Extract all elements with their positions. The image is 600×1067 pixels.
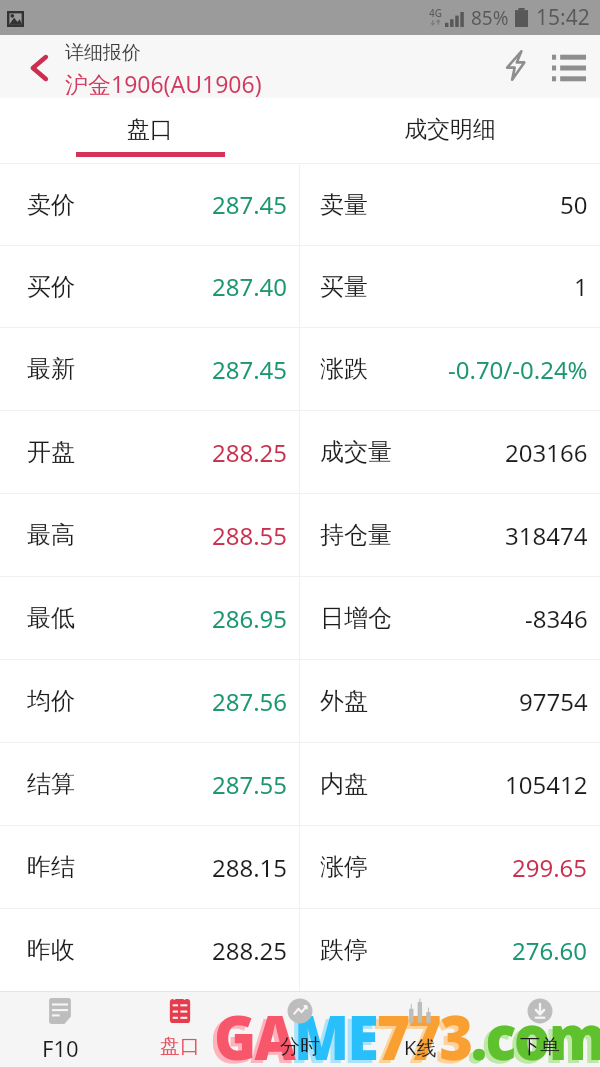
staticText: 15:42 <box>536 3 590 32</box>
staticText: -8346 <box>525 602 588 635</box>
staticText: 318474 <box>505 519 588 552</box>
staticText: m <box>549 994 600 1067</box>
staticText: E <box>343 997 373 1067</box>
staticText: 287.45 <box>212 188 288 221</box>
button[interactable]: 盘口 <box>0 98 300 163</box>
staticText: 4G <box>429 6 442 20</box>
staticText: 7 <box>404 997 435 1067</box>
staticText: 97754 <box>519 685 588 718</box>
button[interactable]: 买量 <box>300 246 600 327</box>
staticText: 287.40 <box>212 270 288 303</box>
staticText: 外盘 <box>320 686 368 716</box>
button[interactable]: 持仓量 <box>300 494 600 576</box>
staticText: 85% <box>471 5 509 31</box>
button[interactable]: 均价 <box>0 660 299 742</box>
staticText: 日增仓 <box>320 603 392 633</box>
button[interactable]: 涨停 <box>300 826 600 908</box>
staticText: 开盘 <box>27 437 75 467</box>
button[interactable]: 昨结 <box>0 826 299 908</box>
staticText: 299.65 <box>512 851 588 884</box>
button[interactable]: 下单 <box>480 991 600 1067</box>
staticText: F10 <box>42 1033 79 1063</box>
staticText: 涨停 <box>320 852 368 882</box>
button[interactable]: 结算 <box>0 743 299 825</box>
staticText: 7 <box>373 997 404 1067</box>
staticText: 1 <box>574 270 588 303</box>
staticText: A <box>254 994 294 1067</box>
staticText: 最新 <box>27 354 75 384</box>
button[interactable]: F10 <box>0 991 120 1067</box>
staticText: G <box>214 994 254 1067</box>
button[interactable]: Quick trade <box>486 35 540 98</box>
staticText: 最高 <box>27 520 75 550</box>
staticText: 成交量 <box>320 437 392 467</box>
staticText: 分时 <box>280 1034 320 1059</box>
button[interactable]: List menu <box>540 35 600 98</box>
staticText: A <box>250 997 290 1067</box>
staticText: 7 <box>408 994 439 1067</box>
staticText: M <box>290 997 343 1067</box>
staticText: 盘口 <box>127 115 173 144</box>
staticText: 跌停 <box>320 935 368 965</box>
button[interactable]: 开盘 <box>0 411 299 493</box>
staticText: 昨收 <box>27 935 75 965</box>
button[interactable]: 昨收 <box>0 909 299 991</box>
staticText: . <box>467 997 481 1067</box>
staticText: 沪金1906(AU1906) <box>65 68 262 99</box>
staticText: 详细报价 <box>65 41 141 65</box>
staticText: 3 <box>439 994 471 1067</box>
staticText: 买量 <box>320 272 368 302</box>
staticText: 203166 <box>505 436 588 469</box>
button[interactable]: 外盘 <box>300 660 600 742</box>
button[interactable]: 成交明细 <box>300 98 600 163</box>
staticText: 287.55 <box>212 768 288 801</box>
button[interactable]: 卖量 <box>300 164 600 245</box>
staticText: 288.55 <box>212 519 288 552</box>
staticText: 结算 <box>27 769 75 799</box>
button[interactable]: 卖价 <box>0 164 299 245</box>
staticText: 持仓量 <box>320 520 392 550</box>
staticText: 287.45 <box>212 353 288 386</box>
staticText: 涨跌 <box>320 354 368 384</box>
staticText: 买价 <box>27 272 75 302</box>
button[interactable]: 买价 <box>0 246 299 327</box>
staticText: o <box>510 997 545 1067</box>
staticText: 286.95 <box>212 602 288 635</box>
staticText: 成交明细 <box>404 115 496 144</box>
staticText: m <box>545 997 600 1067</box>
staticText: 276.60 <box>512 934 588 967</box>
staticText: M <box>294 994 347 1067</box>
button[interactable]: 涨跌 <box>300 328 600 410</box>
staticText: -0.70/-0.24% <box>448 353 588 386</box>
staticText: 内盘 <box>320 769 368 799</box>
button[interactable]: 最新 <box>0 328 299 410</box>
button[interactable]: 日增仓 <box>300 577 600 659</box>
staticText: c <box>481 997 510 1067</box>
staticText: o <box>514 994 549 1067</box>
button[interactable]: 最低 <box>0 577 299 659</box>
button[interactable]: 分时 <box>240 991 360 1067</box>
button[interactable]: K线 <box>360 991 480 1067</box>
staticText: G <box>210 997 250 1067</box>
staticText: 卖价 <box>27 190 75 220</box>
staticText: 均价 <box>27 686 75 716</box>
staticText: 3 <box>435 997 467 1067</box>
button[interactable]: 最高 <box>0 494 299 576</box>
button[interactable]: Back <box>0 35 64 98</box>
button[interactable]: 跌停 <box>300 909 600 991</box>
button[interactable]: 内盘 <box>300 743 600 825</box>
staticText: E <box>347 994 377 1067</box>
staticText: 盘口 <box>160 1034 200 1059</box>
staticText: 最低 <box>27 603 75 633</box>
staticText: c <box>485 994 514 1067</box>
staticText: 7 <box>377 994 408 1067</box>
staticText: . <box>471 994 485 1067</box>
button[interactable]: 成交量 <box>300 411 600 493</box>
button[interactable]: 盘口 <box>120 991 240 1067</box>
staticText: 287.56 <box>212 685 288 718</box>
staticText: 288.25 <box>212 934 288 967</box>
staticText: 50 <box>560 188 588 221</box>
staticText: 昨结 <box>27 852 75 882</box>
staticText: 288.25 <box>212 436 288 469</box>
staticText: K线 <box>404 1034 437 1061</box>
